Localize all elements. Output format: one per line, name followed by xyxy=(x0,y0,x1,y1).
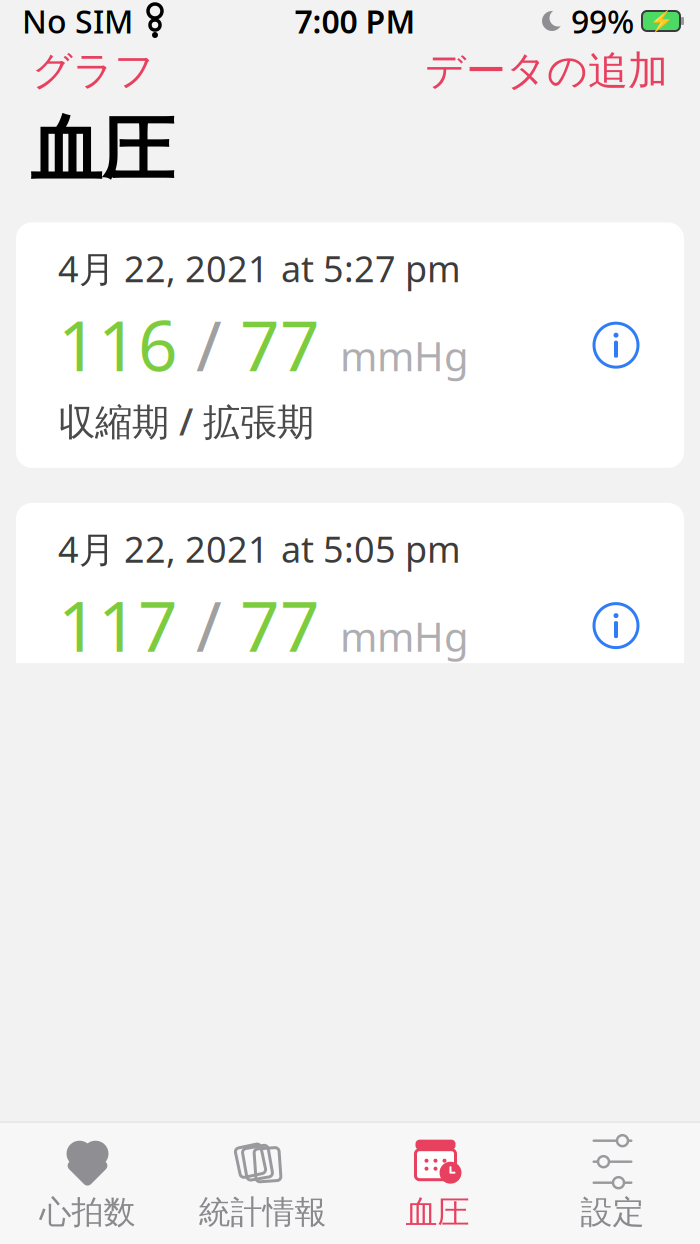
staticText: 血圧 xyxy=(405,1193,469,1232)
staticText: ⚡ xyxy=(648,10,673,32)
button[interactable]: 4月 22, 2021 xyxy=(16,503,684,748)
staticText: 心拍数 xyxy=(39,1193,135,1232)
staticText: 血圧 xyxy=(30,106,174,194)
staticText: 77 xyxy=(240,298,320,390)
staticText: 4月 22, 2021 xyxy=(58,244,269,292)
staticText: 99% xyxy=(571,0,634,42)
staticText: 117 xyxy=(58,579,178,671)
staticText: / xyxy=(178,298,240,390)
staticText: at 5:05 pm xyxy=(281,525,461,573)
staticText: データの追加 xyxy=(425,46,668,95)
staticText: / xyxy=(178,579,240,671)
staticText: 収縮期 / 拡張期 xyxy=(58,396,314,446)
staticText: 7:00 PM xyxy=(294,0,415,42)
staticText: mmHg xyxy=(320,329,469,382)
staticText: 設定 xyxy=(580,1193,644,1232)
button[interactable]: 統計情報 xyxy=(175,1139,350,1232)
staticText: at 5:27 pm xyxy=(281,244,461,292)
button[interactable]: グラフ xyxy=(18,38,169,103)
button[interactable]: 心拍数 xyxy=(0,1139,175,1232)
staticText: 統計情報 xyxy=(198,1193,326,1232)
staticText: mmHg xyxy=(320,610,469,663)
button[interactable]: 設定 xyxy=(525,1139,700,1232)
staticText: 77 xyxy=(240,579,320,671)
button[interactable]: 4月 22, 2021 xyxy=(16,222,684,468)
staticText: No SIM xyxy=(22,0,133,42)
staticText: グラフ xyxy=(32,46,155,95)
staticText: 4月 22, 2021 xyxy=(58,525,269,573)
button[interactable]: データの追加 xyxy=(411,38,682,103)
button[interactable]: 血圧 xyxy=(350,1139,525,1232)
staticText: 116 xyxy=(58,298,178,390)
